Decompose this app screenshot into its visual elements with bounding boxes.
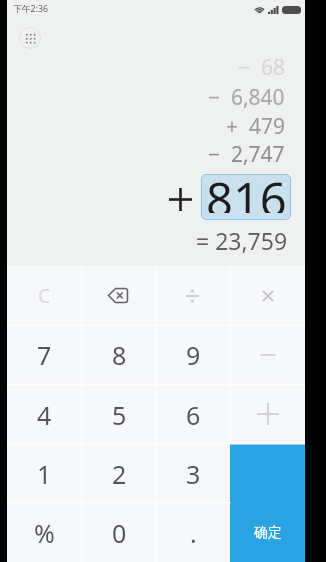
button[interactable]: Divide [155, 266, 230, 325]
button[interactable]: Backspace [81, 266, 155, 325]
staticText: 9 [186, 338, 201, 372]
button[interactable]: 3 [156, 444, 230, 503]
staticText: + 479 [226, 112, 285, 141]
button[interactable]: Minus [230, 325, 305, 384]
staticText: % [34, 516, 55, 550]
button[interactable]: 2 [82, 444, 156, 503]
staticText: 确定 [254, 524, 282, 542]
button[interactable]: Clear [7, 266, 81, 325]
button[interactable]: 6 [156, 385, 230, 444]
button[interactable]: . [156, 503, 230, 562]
button[interactable]: 5 [82, 385, 156, 444]
button[interactable]: % [7, 503, 82, 562]
staticText: 2 [112, 457, 127, 491]
staticText: C [38, 283, 51, 309]
staticText: 3 [186, 457, 201, 491]
staticText: 4 [37, 398, 52, 432]
staticText: 下午2:36 [13, 3, 49, 15]
staticText: 1 [37, 457, 52, 491]
staticText: 5 [112, 398, 127, 432]
button[interactable]: 8 [82, 325, 156, 385]
button[interactable]: 4 [7, 385, 82, 444]
staticText: . [190, 516, 197, 550]
button[interactable]: 0 [82, 503, 156, 562]
button[interactable]: 1 [7, 444, 82, 503]
button[interactable]: 确定 [230, 443, 305, 562]
button[interactable]: History [19, 27, 41, 49]
staticText: = 23,759 [196, 225, 288, 256]
button[interactable]: Plus [230, 384, 305, 443]
staticText: 7 [37, 338, 52, 372]
staticText: 0 [112, 516, 127, 550]
staticText: − 2,747 [208, 140, 285, 169]
button[interactable]: 9 [156, 325, 230, 385]
staticText: − 68 [238, 53, 285, 82]
staticText: 6 [186, 398, 201, 432]
staticText: 816 [206, 167, 287, 213]
staticText: 8 [112, 338, 127, 372]
staticText: − 6,840 [208, 83, 285, 112]
button[interactable]: Multiply [230, 266, 305, 325]
button[interactable]: 7 [7, 325, 82, 385]
